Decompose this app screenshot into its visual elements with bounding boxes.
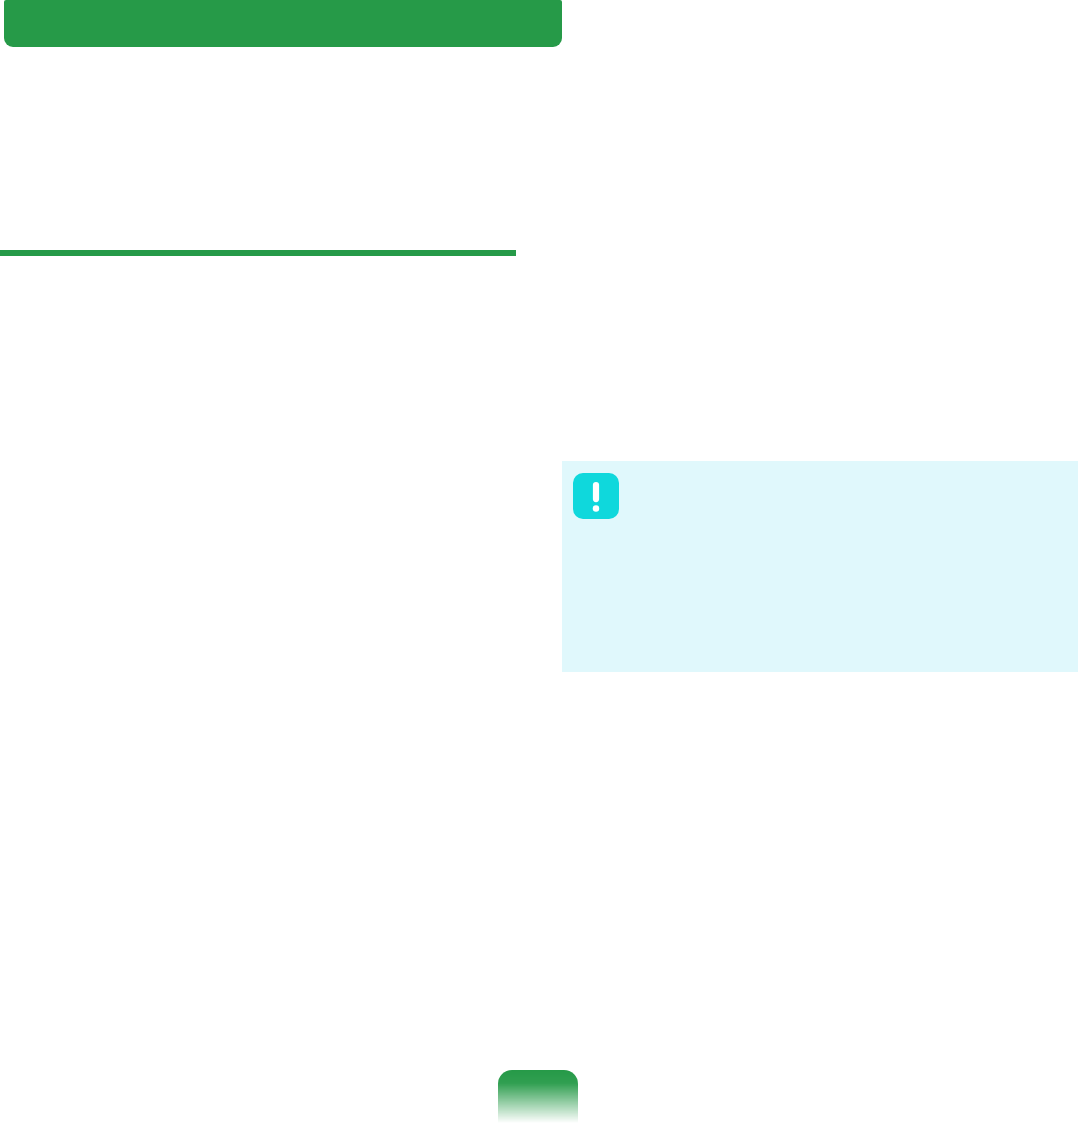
other: Important note [573,473,619,519]
button[interactable] [4,0,562,47]
button[interactable]: Important note [562,461,1078,672]
button[interactable] [498,1070,578,1123]
